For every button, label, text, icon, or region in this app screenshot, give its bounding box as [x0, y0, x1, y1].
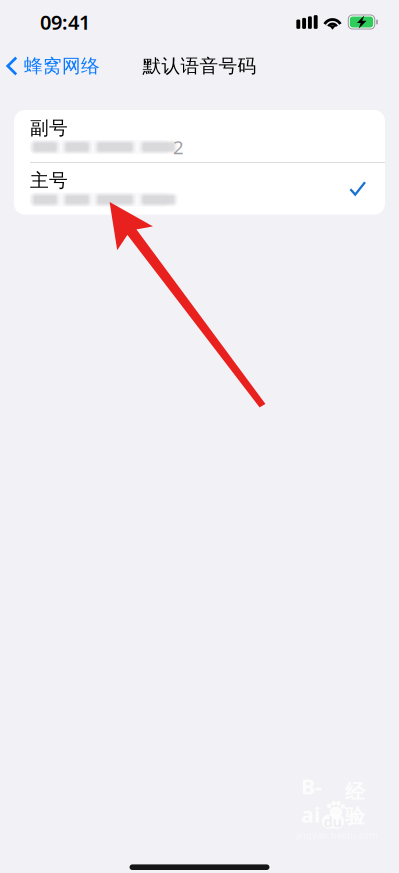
- button[interactable]: 蜂窝网络: [0, 46, 100, 85]
- staticText: 09:41: [40, 9, 90, 35]
- button[interactable]: 主号: [14, 163, 385, 215]
- staticText: 默认语音号码: [142, 54, 256, 77]
- staticText: 2: [173, 135, 184, 159]
- staticText: 经验: [345, 779, 365, 829]
- staticText: du: [323, 812, 342, 831]
- staticText: 副号: [30, 116, 68, 139]
- staticText: Bai: [301, 772, 322, 829]
- button[interactable]: 副号: [14, 110, 385, 162]
- staticText: 蜂窝网络: [24, 54, 100, 77]
- staticText: 主号: [30, 169, 68, 192]
